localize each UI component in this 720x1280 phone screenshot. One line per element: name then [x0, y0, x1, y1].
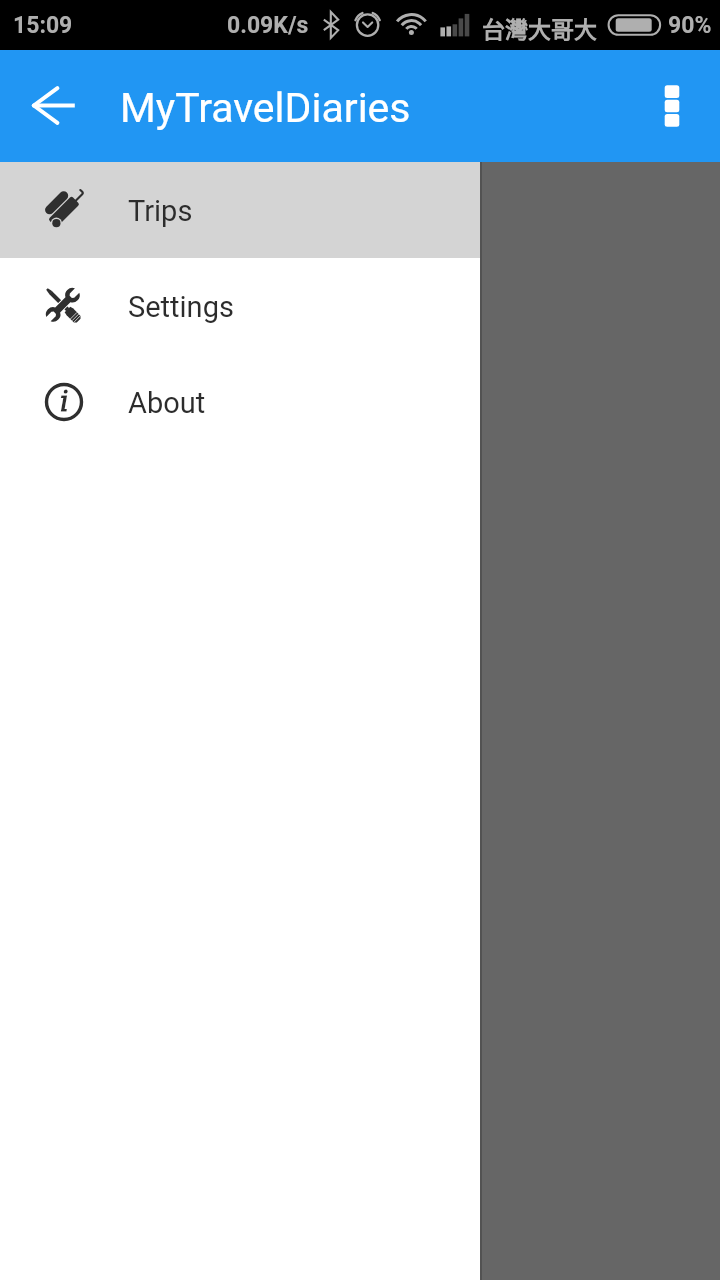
staticText: i	[60, 386, 69, 417]
staticText: 台灣大哥大	[482, 11, 597, 44]
button[interactable]: Back	[6, 58, 102, 154]
button[interactable]: i	[0, 354, 480, 450]
staticText: MyTravelDiaries	[120, 84, 411, 132]
staticText: Settings	[128, 290, 234, 324]
staticText: 0.09K/s	[227, 12, 309, 39]
staticText: 15:09	[13, 12, 73, 39]
button[interactable]: Trips	[0, 162, 480, 258]
staticText: About	[128, 386, 206, 420]
staticText: 90%	[668, 12, 712, 39]
button[interactable]: Settings	[0, 258, 480, 354]
button[interactable]: More options	[624, 58, 720, 154]
staticText: Trips	[128, 194, 193, 228]
